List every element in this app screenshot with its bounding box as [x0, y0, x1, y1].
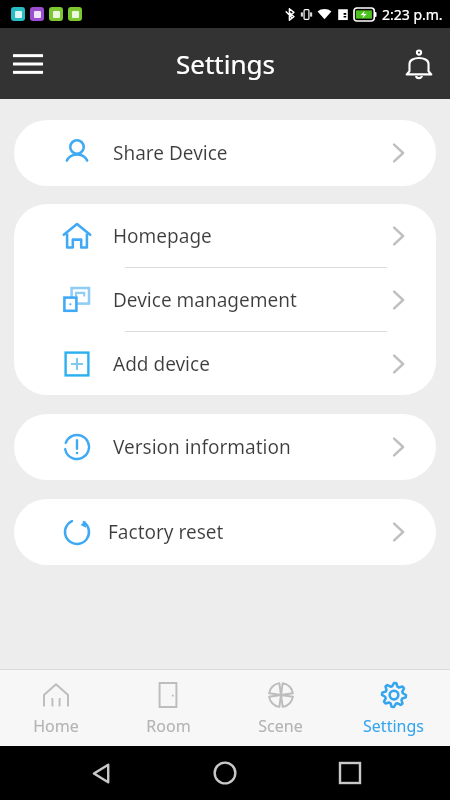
button[interactable]: Room — [112, 670, 224, 746]
staticText: Settings — [363, 715, 424, 737]
button[interactable]: Homepage — [14, 204, 436, 267]
staticText: 2:23 p.m. — [382, 5, 443, 24]
staticText: Factory reset — [108, 519, 224, 545]
button[interactable]: Back — [77, 749, 125, 797]
button[interactable]: Notifications — [396, 41, 442, 87]
button[interactable]: Scene — [224, 670, 337, 746]
button[interactable]: Menu — [4, 40, 52, 88]
staticText: Device management — [113, 287, 297, 313]
staticText: Add device — [113, 351, 210, 377]
staticText: Scene — [258, 715, 303, 737]
staticText: Home — [33, 715, 79, 737]
button[interactable]: Device management — [14, 268, 436, 331]
button[interactable]: Share Device — [14, 120, 436, 186]
button[interactable]: Home — [201, 749, 249, 797]
staticText: Homepage — [113, 223, 212, 249]
button[interactable]: Factory reset — [14, 499, 436, 565]
button[interactable]: Recents — [326, 749, 374, 797]
button[interactable]: Add device — [14, 332, 436, 395]
staticText: Room — [146, 715, 191, 737]
staticText: Settings — [176, 46, 275, 81]
button[interactable]: Home — [0, 670, 112, 746]
button[interactable]: Version information — [14, 414, 436, 480]
staticText: Share Device — [113, 140, 228, 166]
button[interactable]: Settings — [337, 670, 450, 746]
staticText: Version information — [113, 434, 291, 460]
